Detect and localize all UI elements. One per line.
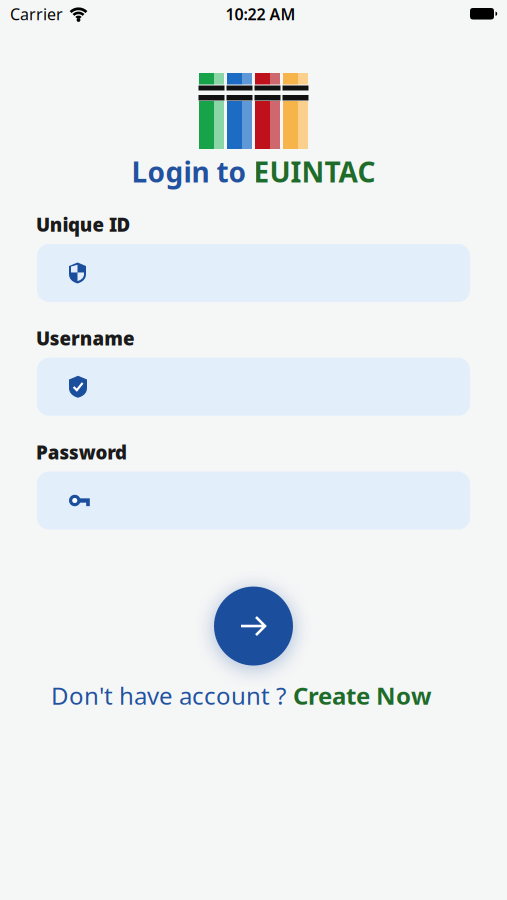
staticText: Don't have account ? (51, 680, 286, 711)
staticText: EUINTAC (253, 153, 375, 190)
staticText: Login to (131, 153, 246, 190)
button[interactable]: Log In (214, 587, 293, 666)
staticText: Create Now (293, 680, 432, 711)
button[interactable]: Password (37, 472, 470, 530)
staticText: Unique ID (36, 212, 131, 237)
button[interactable]: Create Now (51, 680, 432, 711)
staticText: 10:22 AM (225, 3, 295, 25)
button[interactable]: Username (37, 358, 470, 416)
staticText: Carrier (10, 3, 63, 25)
staticText: Username (36, 326, 135, 351)
staticText: Password (36, 440, 127, 465)
button[interactable]: Unique ID (37, 244, 470, 302)
